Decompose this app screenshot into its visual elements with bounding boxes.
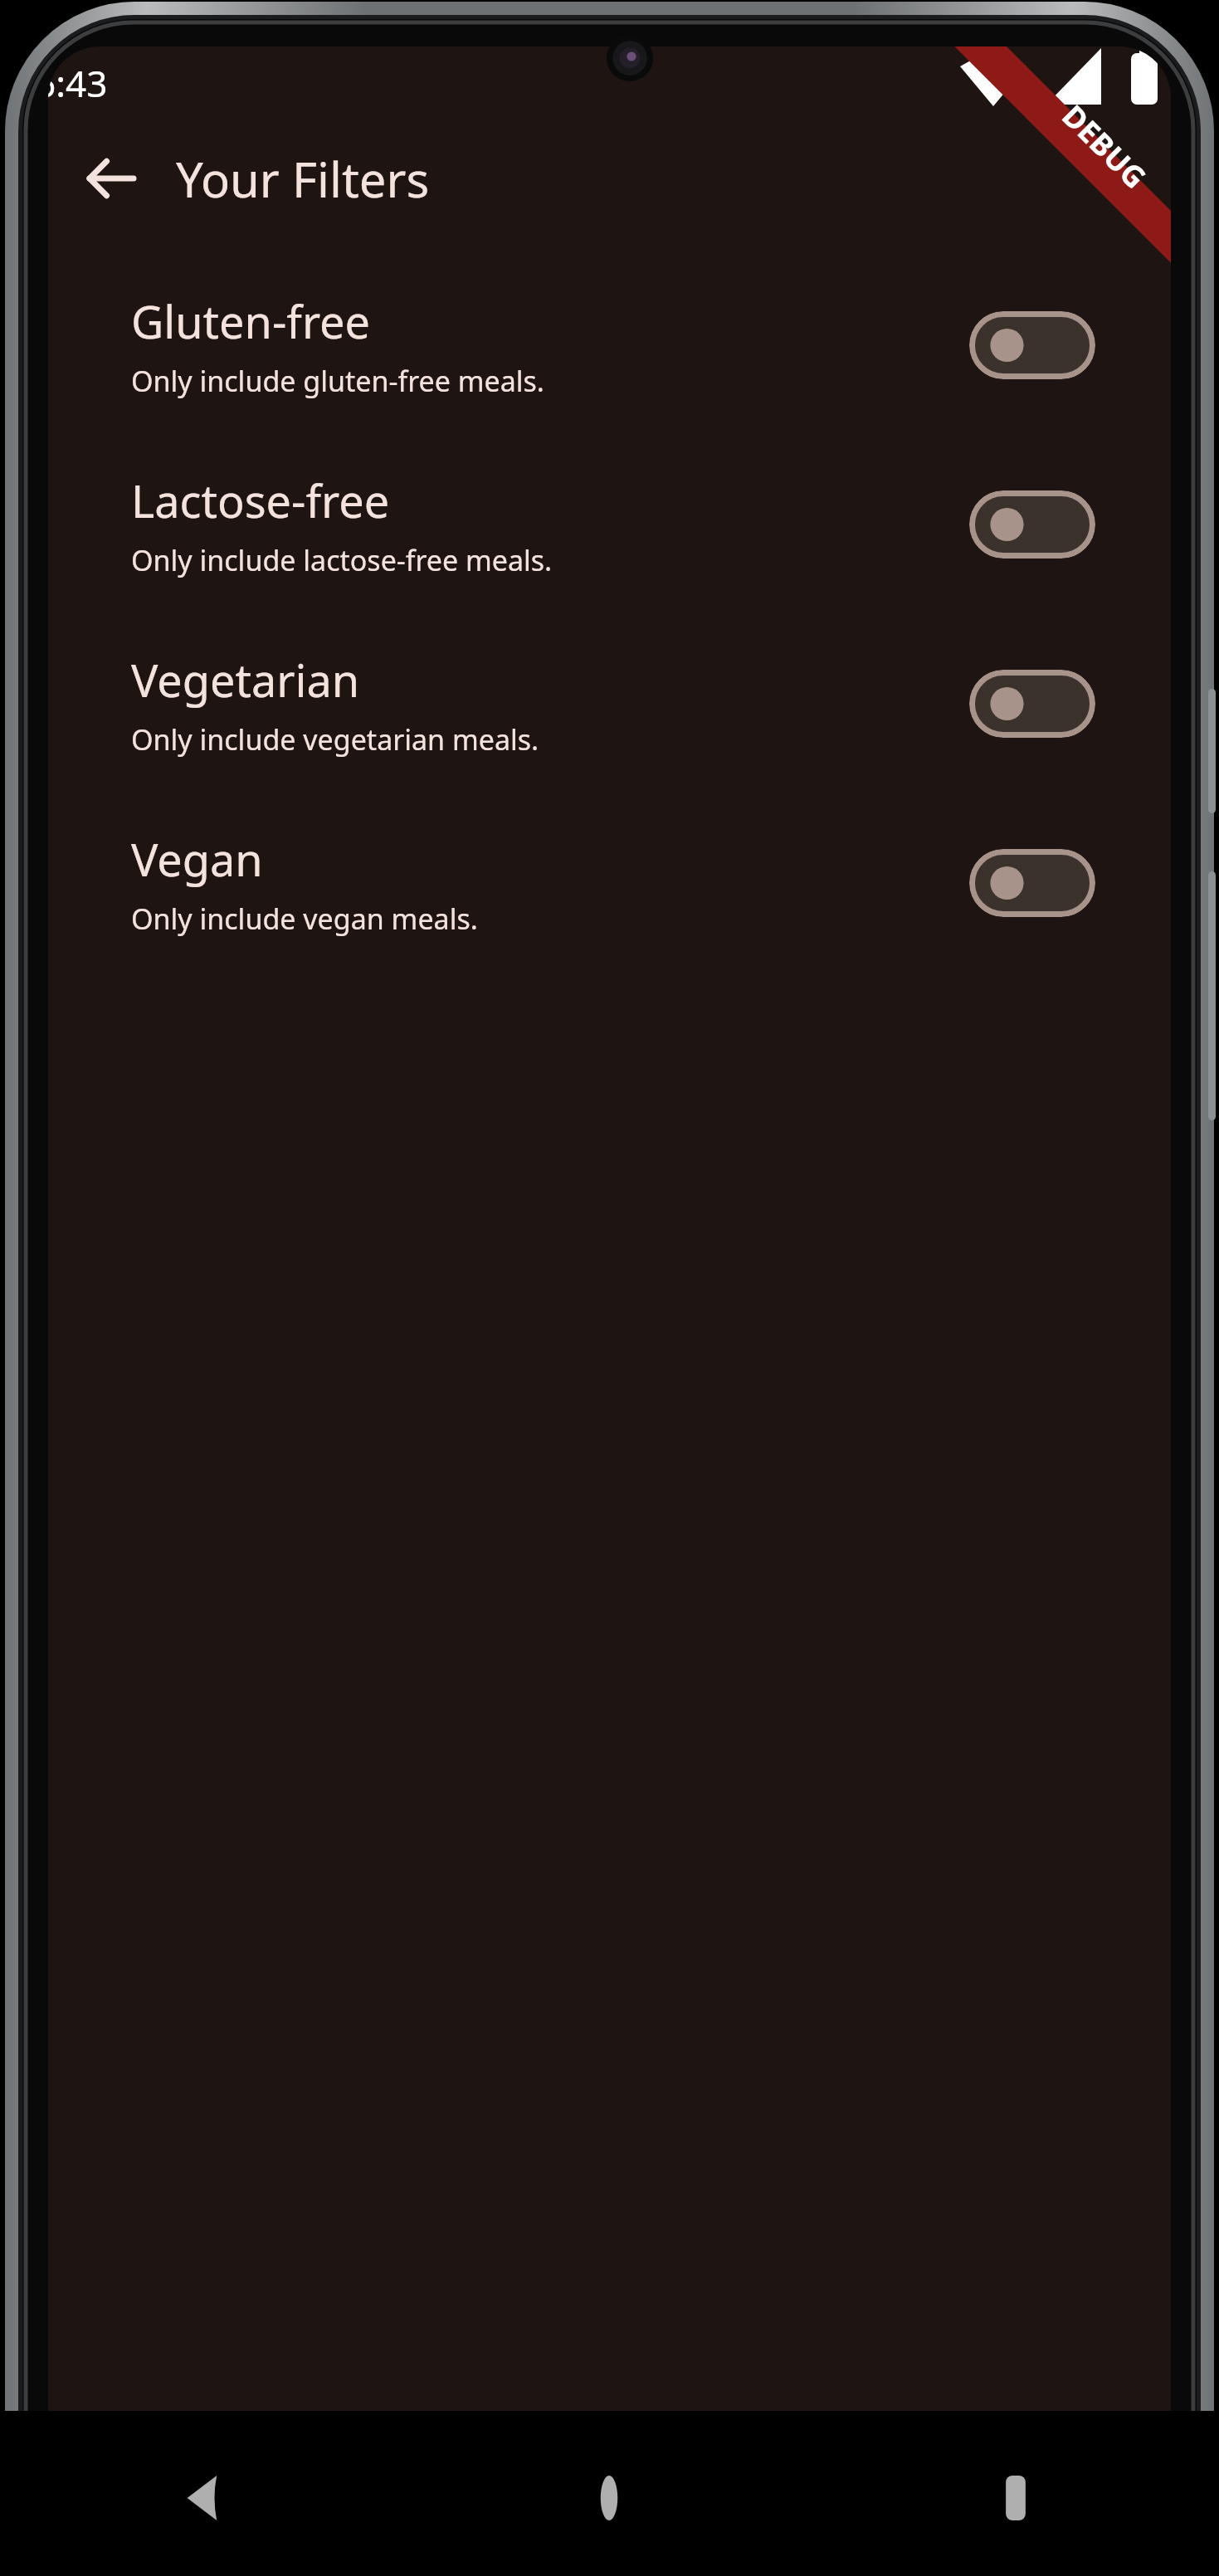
- staticText: DEBUG: [1054, 96, 1155, 197]
- staticText: Vegetarian: [131, 649, 360, 710]
- button[interactable]: Back: [0, 2411, 406, 2576]
- staticText: Only include lactose-free meals.: [131, 541, 553, 579]
- staticText: Only include gluten-free meals.: [131, 362, 544, 400]
- staticText: Gluten-free: [131, 290, 371, 352]
- button[interactable]: Vegan: [48, 793, 1171, 973]
- staticText: Lactose-free: [131, 470, 390, 531]
- button[interactable]: Toggle filter: [969, 849, 1095, 917]
- button[interactable]: Vegetarian: [48, 614, 1171, 793]
- button[interactable]: Toggle filter: [969, 490, 1095, 559]
- button[interactable]: Home: [406, 2411, 812, 2576]
- button[interactable]: Toggle filter: [969, 311, 1095, 379]
- button[interactable]: Toggle filter: [969, 670, 1095, 738]
- staticText: Only include vegetarian meals.: [131, 720, 539, 759]
- button[interactable]: Back: [70, 138, 151, 219]
- button[interactable]: Gluten-free: [48, 256, 1171, 435]
- staticText: Your Filters: [176, 146, 430, 212]
- staticText: 6:43: [48, 58, 108, 108]
- staticText: Only include vegan meals.: [131, 900, 478, 938]
- button[interactable]: Lactose-free: [48, 435, 1171, 614]
- button[interactable]: Recent apps: [812, 2411, 1219, 2576]
- staticText: Vegan: [131, 828, 263, 890]
